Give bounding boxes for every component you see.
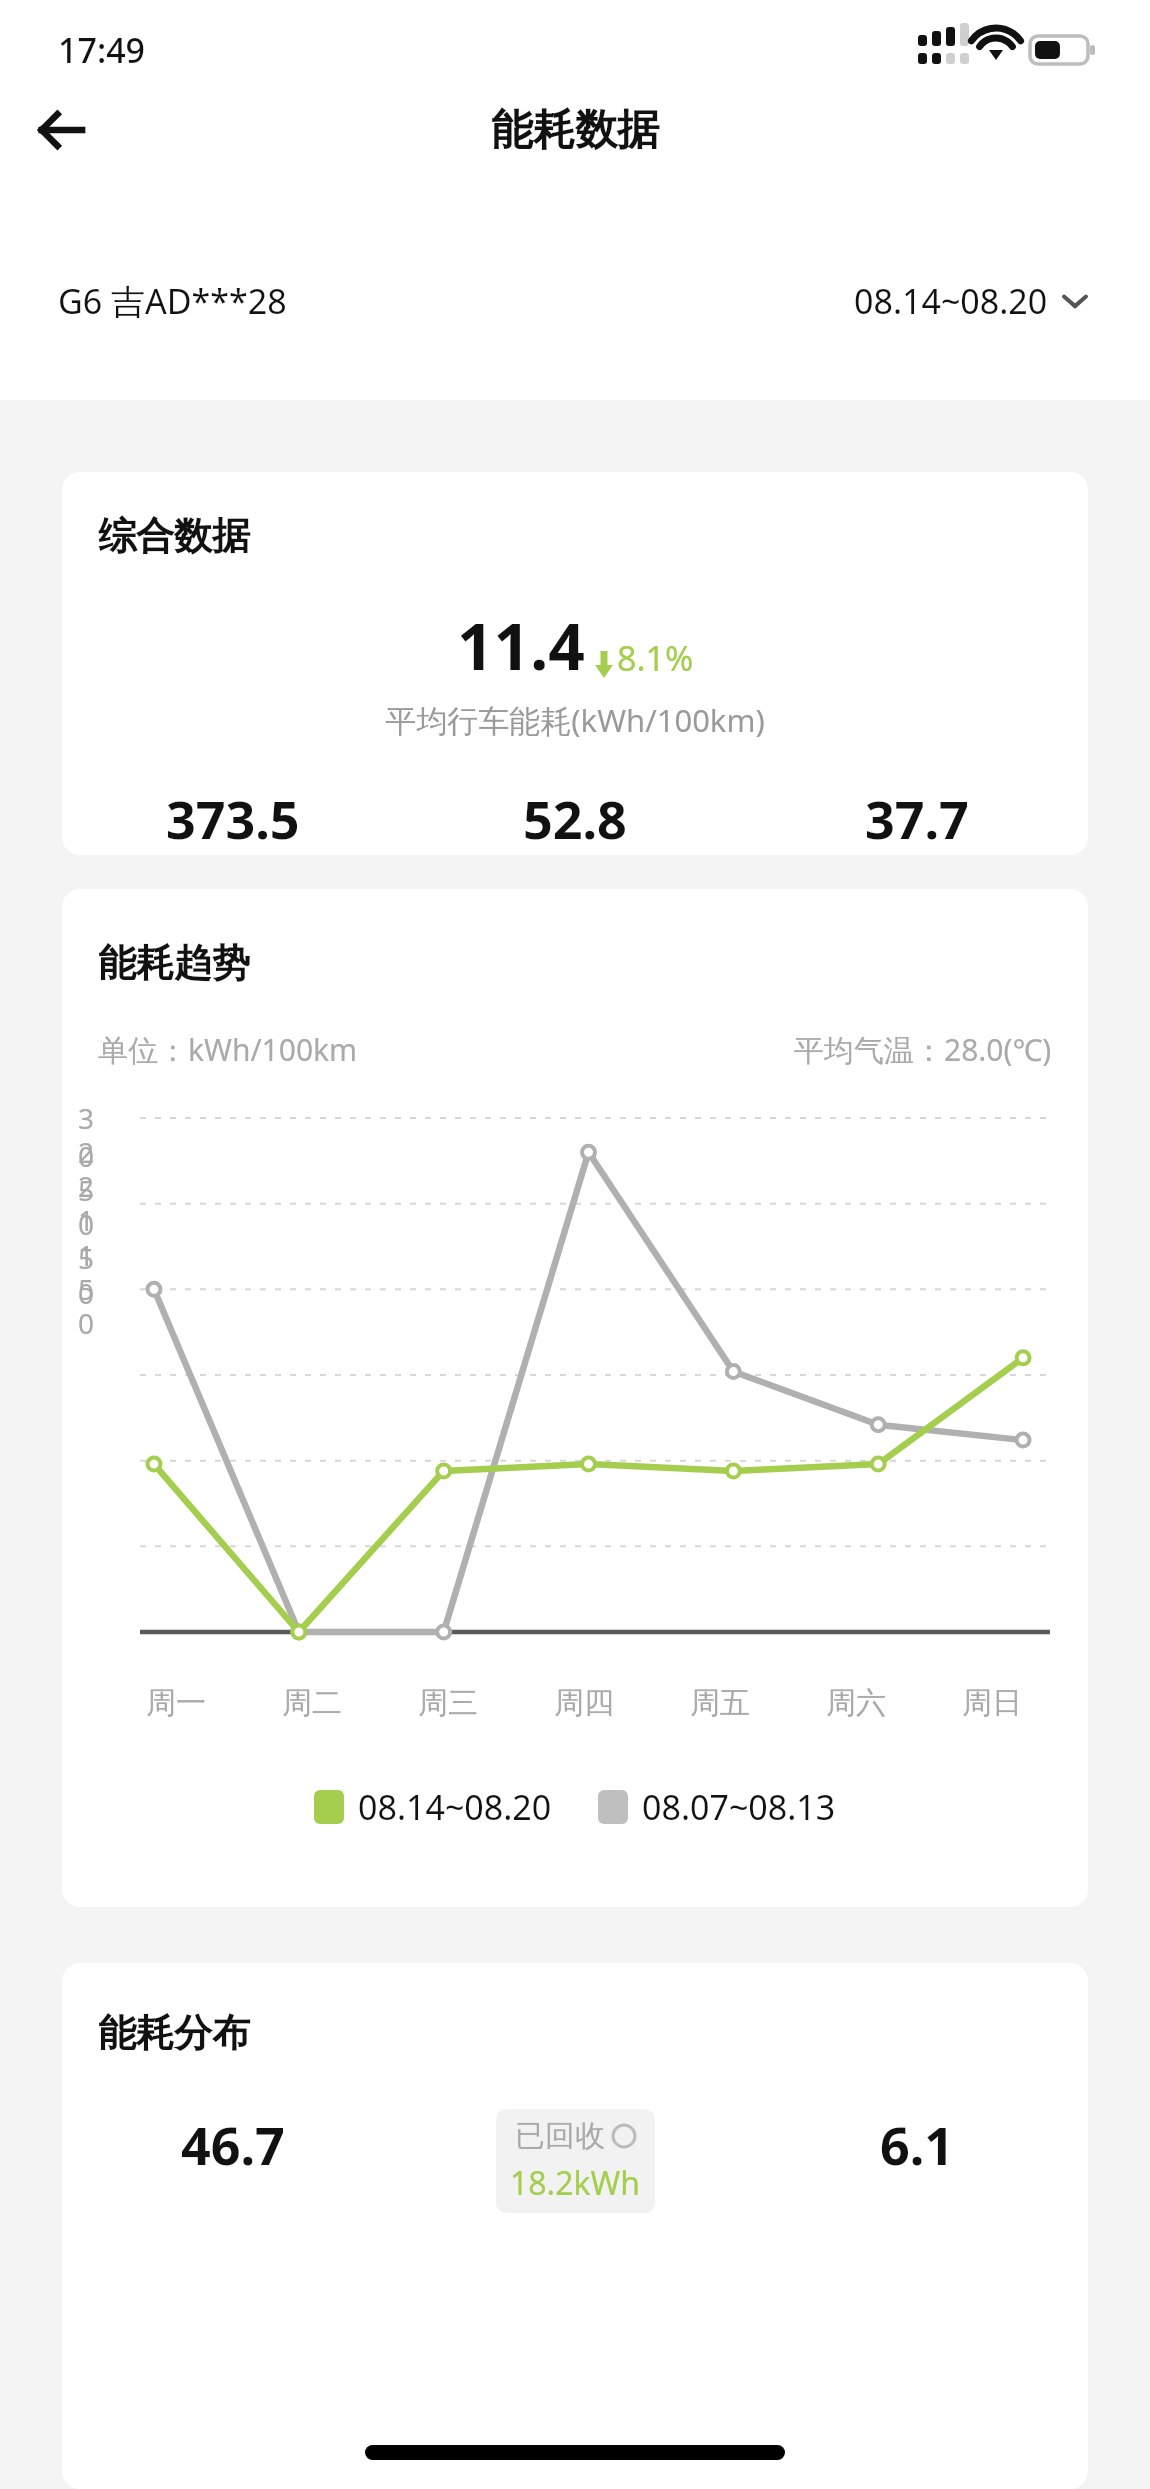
staticText: 20	[62, 1167, 94, 1243]
button[interactable]: 能耗趋势	[62, 889, 1088, 1907]
staticText: 52.8	[523, 783, 627, 854]
staticText: 周日	[962, 1684, 1022, 1722]
staticText: 已回收	[515, 2117, 605, 2155]
staticText: 能耗趋势	[98, 939, 250, 987]
button[interactable]: 能耗分布	[62, 1963, 1088, 2489]
staticText: 能耗数据	[491, 104, 659, 157]
staticText: 8.1%	[617, 635, 694, 681]
staticText: 能耗分布	[98, 2009, 250, 2057]
staticText: 平均气温：28.0(℃)	[794, 1029, 1052, 1070]
staticText: 周三	[418, 1684, 478, 1722]
staticText: 周五	[690, 1684, 750, 1722]
staticText: 0	[62, 1304, 94, 1342]
staticText: 30	[62, 1099, 94, 1175]
staticText: G6 吉AD***28	[58, 278, 287, 324]
button[interactable]: 已回收	[510, 2117, 641, 2205]
staticText: 周一	[146, 1684, 206, 1722]
button[interactable]: 08.14~08.20	[850, 272, 1092, 330]
button[interactable]: Back	[24, 93, 98, 167]
staticText: 08.14~08.20	[358, 1784, 552, 1830]
button[interactable]: 综合数据	[62, 472, 1088, 855]
staticText: 17:49	[58, 27, 146, 73]
staticText: 周六	[826, 1684, 886, 1722]
staticText: 10	[62, 1236, 94, 1312]
staticText: 单位：kWh/100km	[98, 1029, 358, 1070]
staticText: 11.4	[457, 602, 585, 689]
staticText: 46.7	[181, 2109, 285, 2180]
staticText: 5	[62, 1270, 94, 1308]
staticText: 周二	[282, 1684, 342, 1722]
staticText: 综合数据	[98, 512, 250, 560]
staticText: 6.1	[880, 2109, 955, 2180]
staticText: 37.7	[865, 783, 969, 854]
staticText: 15	[62, 1201, 94, 1277]
staticText: 25	[62, 1133, 94, 1209]
staticText: 373.5	[166, 783, 300, 854]
staticText: 18.2kWh	[510, 2161, 641, 2205]
staticText: 08.07~08.13	[642, 1784, 836, 1830]
staticText: 周四	[554, 1684, 614, 1722]
staticText: 平均行车能耗(kWh/100km)	[62, 699, 1088, 741]
staticText: 08.14~08.20	[854, 278, 1048, 324]
